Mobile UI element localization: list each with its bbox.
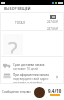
staticText: ТОТАЛ: [15, 21, 25, 25]
staticText: 247.66 ₽: [47, 20, 59, 24]
staticText: подтвердите свой адрес: [13, 77, 49, 81]
button[interactable]: ВЫБОР ВЕЩЕЙ: [0, 5, 64, 12]
button[interactable]: Delivery: [3, 63, 63, 71]
staticText: Сообщение отзывы: [2, 90, 31, 94]
button[interactable]: Package: [3, 73, 63, 83]
other: Delivery: [3, 63, 11, 69]
other: More: [55, 75, 59, 79]
staticText: ?: [8, 34, 18, 55]
staticText: Срок доставки заказа: [13, 63, 45, 67]
staticText: 247.66 ₽: [47, 27, 59, 30]
staticText: ВЫБОР ВЕЩЕЙ: [4, 6, 31, 11]
staticText: доставки и телефон: [13, 81, 42, 83]
other: Package: [3, 73, 11, 79]
staticText: При оформлении заказа: [13, 73, 49, 77]
staticText: 9,4/10: [48, 88, 62, 94]
button[interactable]: ТОТАЛ: [1, 13, 63, 30]
staticText: составит 10 дней: [13, 67, 38, 71]
